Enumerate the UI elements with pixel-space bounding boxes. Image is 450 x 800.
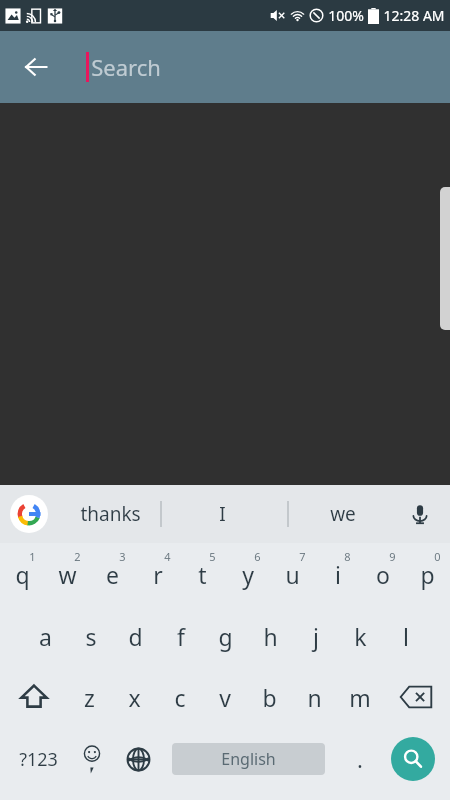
button[interactable]: Backspace	[382, 666, 450, 728]
button[interactable]: j	[293, 606, 338, 666]
button[interactable]: n	[292, 666, 337, 728]
staticText: z	[84, 682, 95, 713]
button[interactable]: thanks	[60, 485, 160, 543]
staticText: 3	[119, 549, 126, 564]
staticText: j	[313, 621, 319, 652]
button[interactable]: b	[247, 666, 292, 728]
button[interactable]: s	[68, 606, 113, 666]
staticText: ?123	[19, 747, 58, 772]
staticText: w	[58, 559, 77, 590]
button[interactable]: g	[203, 606, 248, 666]
button[interactable]: ?123	[8, 728, 68, 790]
button[interactable]: Search	[86, 45, 434, 89]
staticText: English	[221, 748, 276, 770]
button[interactable]: .	[337, 728, 383, 790]
staticText: 9	[389, 549, 396, 564]
staticText: Search	[91, 52, 161, 82]
staticText: 0	[434, 549, 441, 564]
staticText: i	[335, 559, 341, 590]
button[interactable]: we	[297, 485, 389, 543]
staticText: b	[262, 682, 277, 713]
button[interactable]: 8	[315, 543, 360, 606]
staticText: m	[349, 682, 371, 713]
staticText: 4	[164, 549, 171, 564]
staticText: l	[403, 621, 409, 652]
staticText: h	[263, 621, 278, 652]
button[interactable]: Search	[391, 737, 435, 781]
staticText: 100%	[328, 6, 364, 25]
button[interactable]: English	[172, 743, 325, 775]
button[interactable]: 5	[180, 543, 225, 606]
button[interactable]: 2	[45, 543, 90, 606]
staticText: 7	[299, 549, 306, 564]
staticText: 5	[209, 549, 216, 564]
staticText: we	[330, 501, 356, 527]
button[interactable]: f	[158, 606, 203, 666]
button[interactable]: d	[113, 606, 158, 666]
button[interactable]: Shift	[0, 666, 67, 728]
staticText: e	[106, 559, 119, 590]
staticText: 12:28 AM	[383, 6, 445, 25]
staticText: g	[218, 621, 233, 652]
button[interactable]: 1	[0, 543, 45, 606]
button[interactable]: z	[67, 666, 112, 728]
staticText: a	[39, 621, 52, 652]
staticText: u	[285, 559, 300, 590]
staticText: thanks	[80, 501, 141, 527]
button[interactable]: x	[112, 666, 157, 728]
staticText: k	[354, 621, 367, 652]
button[interactable]: a	[22, 606, 68, 666]
staticText: I	[219, 501, 226, 527]
staticText: .	[357, 744, 363, 774]
staticText: v	[219, 682, 231, 713]
staticText: 2	[74, 549, 81, 564]
button[interactable]: 7	[270, 543, 315, 606]
button[interactable]: Voice input	[398, 492, 442, 536]
staticText: x	[128, 682, 141, 713]
button[interactable]: 4	[135, 543, 180, 606]
staticText: o	[376, 559, 390, 590]
button[interactable]: 9	[360, 543, 405, 606]
button[interactable]: l	[383, 606, 428, 666]
staticText: p	[420, 559, 435, 590]
button[interactable]: Change language	[115, 728, 161, 790]
button[interactable]: h	[248, 606, 293, 666]
button[interactable]: v	[202, 666, 247, 728]
staticText: r	[153, 559, 163, 590]
button[interactable]: Google	[10, 495, 48, 533]
staticText: q	[15, 559, 30, 590]
staticText: n	[307, 682, 322, 713]
staticText: 6	[254, 549, 261, 564]
staticText: c	[174, 682, 186, 713]
button[interactable]: k	[338, 606, 383, 666]
staticText: d	[128, 621, 143, 652]
button[interactable]: Emoji and comma	[70, 728, 114, 790]
button[interactable]: 3	[90, 543, 135, 606]
button[interactable]: Back	[12, 43, 60, 91]
button[interactable]: I	[172, 485, 272, 543]
button[interactable]: 6	[225, 543, 270, 606]
button[interactable]: c	[157, 666, 202, 728]
button[interactable]: 0	[405, 543, 450, 606]
staticText: y	[242, 559, 254, 590]
staticText: s	[85, 621, 97, 652]
button[interactable]: m	[337, 666, 382, 728]
staticText: f	[177, 621, 185, 652]
staticText: 8	[344, 549, 351, 564]
staticText: 1	[29, 549, 36, 564]
staticText: t	[198, 559, 207, 590]
